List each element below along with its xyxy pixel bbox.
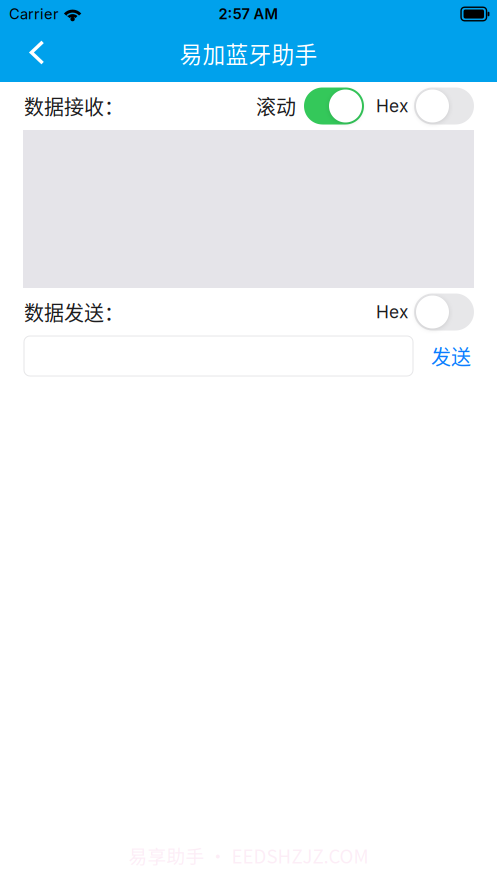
staticText: 发送 xyxy=(431,341,471,370)
staticText: 2:57 AM xyxy=(218,5,278,23)
button[interactable]: Back xyxy=(14,33,58,77)
button[interactable]: Hex send xyxy=(414,293,474,330)
button[interactable]: Hex receive xyxy=(414,87,474,124)
staticText: Hex xyxy=(376,95,408,116)
button[interactable]: 发送 xyxy=(413,336,474,376)
staticText: Hex xyxy=(376,301,408,322)
staticText: 数据发送： xyxy=(24,297,124,326)
staticText: 数据接收： xyxy=(24,91,124,120)
button[interactable]: Auto scroll xyxy=(304,87,364,124)
staticText: 易加蓝牙助手 xyxy=(179,37,317,69)
staticText: 滚动 xyxy=(256,91,296,120)
staticText: Carrier xyxy=(9,5,59,23)
staticText: 易享助手 · EEDSHZJZ.COM xyxy=(128,842,368,869)
